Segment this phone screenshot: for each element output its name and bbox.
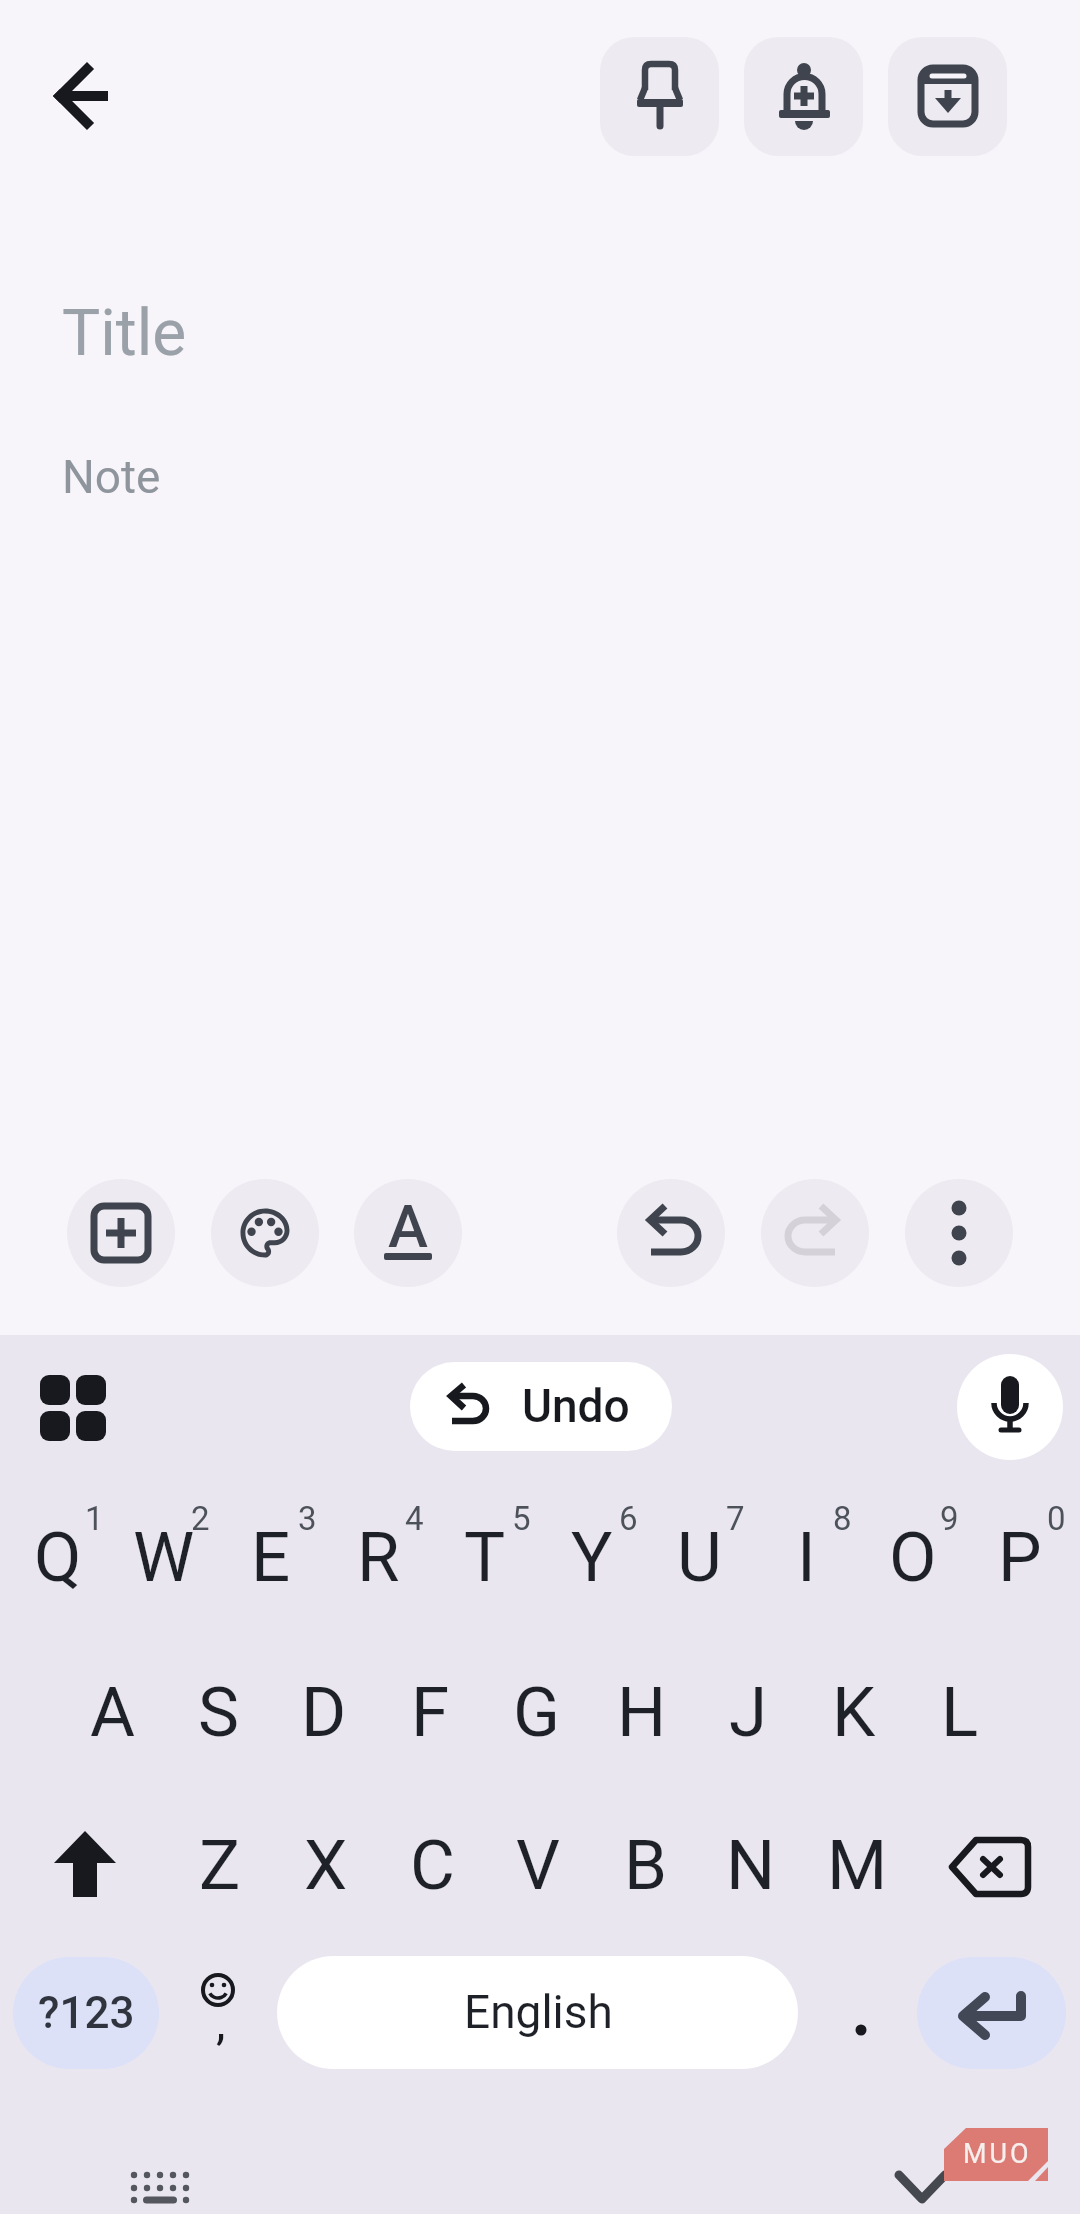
- button[interactable]: [888, 37, 1007, 156]
- staticText: U: [677, 1517, 722, 1598]
- button[interactable]: O: [861, 1485, 965, 1629]
- staticText: N: [726, 1825, 776, 1906]
- button[interactable]: D: [272, 1640, 376, 1784]
- button[interactable]: [617, 1179, 725, 1287]
- staticText: O: [889, 1517, 937, 1598]
- button[interactable]: B: [593, 1793, 697, 1937]
- staticText: Title: [62, 296, 187, 366]
- staticText: 0: [1047, 1499, 1066, 1538]
- staticText: Z: [199, 1825, 241, 1906]
- staticText: 7: [726, 1499, 745, 1538]
- button[interactable]: [166, 1957, 274, 2069]
- button[interactable]: X: [274, 1793, 378, 1937]
- staticText: D: [301, 1672, 347, 1753]
- button[interactable]: [67, 1179, 175, 1287]
- button[interactable]: M: [805, 1793, 909, 1937]
- staticText: K: [832, 1672, 876, 1753]
- button[interactable]: [31, 1795, 139, 1939]
- staticText: 1: [85, 1499, 104, 1538]
- staticText: J: [729, 1672, 768, 1753]
- button[interactable]: Q: [6, 1485, 110, 1629]
- staticText: P: [998, 1517, 1042, 1598]
- staticText: W: [133, 1517, 195, 1598]
- staticText: A: [388, 1191, 428, 1261]
- button[interactable]: A: [61, 1640, 165, 1784]
- button[interactable]: V: [486, 1793, 590, 1937]
- staticText: 5: [512, 1499, 531, 1538]
- staticText: X: [304, 1825, 348, 1906]
- button[interactable]: [354, 1179, 462, 1287]
- button[interactable]: [957, 1354, 1063, 1460]
- staticText: F: [411, 1672, 450, 1753]
- button[interactable]: [744, 37, 863, 156]
- staticText: A: [90, 1672, 136, 1753]
- button[interactable]: F: [378, 1640, 482, 1784]
- button[interactable]: P: [968, 1485, 1072, 1629]
- staticText: 8: [833, 1499, 852, 1538]
- button[interactable]: U: [647, 1485, 751, 1629]
- staticText: English: [464, 1985, 613, 2039]
- button[interactable]: K: [802, 1640, 906, 1784]
- button[interactable]: I: [754, 1485, 858, 1629]
- button[interactable]: [30, 1365, 116, 1451]
- staticText: 6: [619, 1499, 638, 1538]
- button[interactable]: Z: [168, 1793, 272, 1937]
- staticText: B: [624, 1825, 667, 1906]
- staticText: H: [617, 1672, 667, 1753]
- staticText: MUO: [963, 2138, 1032, 2170]
- button[interactable]: [761, 1179, 869, 1287]
- staticText: L: [941, 1672, 979, 1753]
- button[interactable]: W: [112, 1485, 216, 1629]
- staticText: M: [827, 1825, 888, 1906]
- staticText: Y: [571, 1517, 613, 1598]
- staticText: V: [516, 1825, 560, 1906]
- button[interactable]: [917, 1957, 1066, 2069]
- button[interactable]: C: [380, 1793, 484, 1937]
- button[interactable]: G: [484, 1640, 588, 1784]
- staticText: 9: [940, 1499, 959, 1538]
- staticText: I: [797, 1517, 816, 1598]
- staticText: 3: [298, 1499, 317, 1538]
- button[interactable]: [810, 1957, 912, 2069]
- button[interactable]: S: [166, 1640, 270, 1784]
- button[interactable]: [905, 1179, 1013, 1287]
- button[interactable]: E: [219, 1485, 323, 1629]
- staticText: S: [198, 1672, 239, 1753]
- button[interactable]: R: [326, 1485, 430, 1629]
- button[interactable]: J: [696, 1640, 800, 1784]
- button[interactable]: [277, 1956, 798, 2069]
- staticText: T: [464, 1517, 506, 1598]
- staticText: 2: [191, 1499, 210, 1538]
- staticText: E: [251, 1517, 291, 1598]
- button[interactable]: N: [699, 1793, 803, 1937]
- staticText: Undo: [522, 1379, 630, 1433]
- button[interactable]: H: [590, 1640, 694, 1784]
- staticText: R: [357, 1517, 400, 1598]
- staticText: Note: [62, 450, 161, 504]
- staticText: 4: [405, 1499, 424, 1538]
- button[interactable]: [36, 48, 132, 144]
- staticText: G: [513, 1672, 560, 1753]
- staticText: Q: [34, 1517, 82, 1598]
- staticText: ,: [216, 1994, 226, 2050]
- button[interactable]: [13, 1957, 159, 2069]
- button[interactable]: Y: [540, 1485, 644, 1629]
- staticText: C: [410, 1825, 455, 1906]
- staticText: ?123: [38, 1987, 135, 2039]
- button[interactable]: T: [433, 1485, 537, 1629]
- button[interactable]: L: [908, 1640, 1012, 1784]
- button[interactable]: [600, 37, 719, 156]
- button[interactable]: [936, 1795, 1044, 1939]
- button[interactable]: [211, 1179, 319, 1287]
- button[interactable]: [410, 1362, 672, 1451]
